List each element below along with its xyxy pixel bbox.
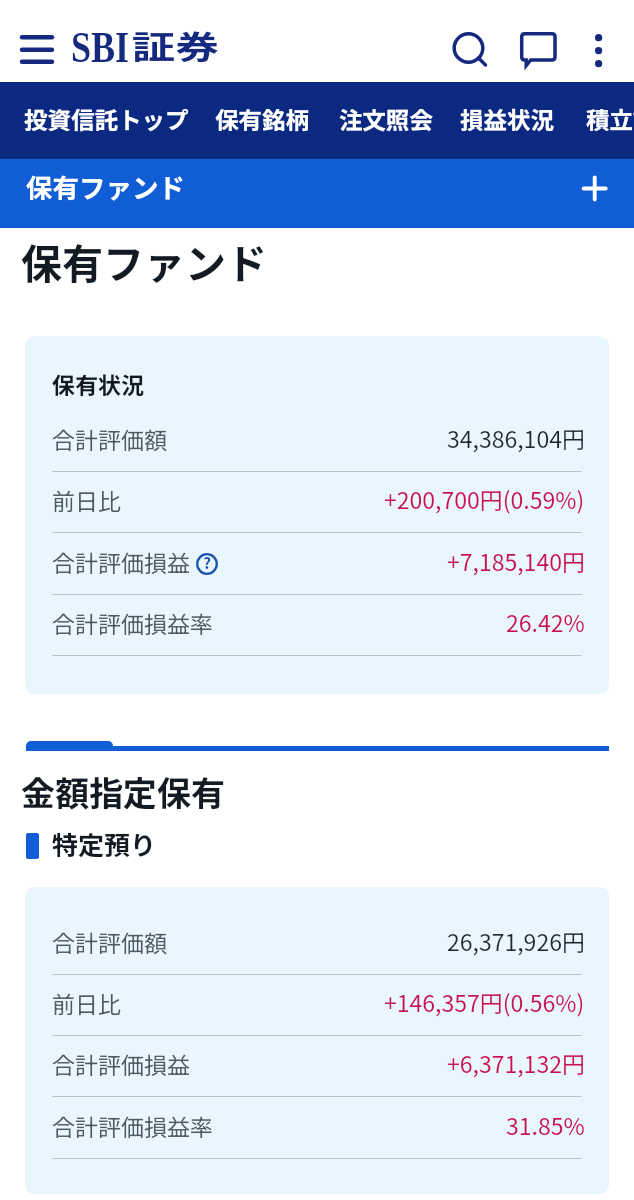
button[interactable]: 合計評価額 (52, 411, 582, 472)
staticText: +6,371,132円 (447, 1046, 585, 1079)
staticText: 34,386,104円 (447, 421, 585, 454)
button[interactable]: More options (579, 22, 619, 62)
button[interactable]: 合計評価損益 (52, 1036, 582, 1097)
button[interactable]: 特定預り (26, 825, 157, 863)
staticText: +200,700円(0.59%) (384, 482, 585, 515)
staticText: 前日比 (52, 483, 121, 516)
staticText: 証券 (132, 21, 220, 68)
button[interactable]: 合計評価額 (52, 914, 582, 975)
button[interactable]: 保有銘柄 (215, 102, 309, 136)
staticText: 26,371,926円 (447, 924, 585, 957)
staticText: 保有状況 (52, 367, 144, 400)
staticText: +7,185,140円 (447, 544, 585, 577)
staticText: 特定預り (52, 825, 157, 863)
button[interactable]: 合計評価損益率 (52, 1097, 582, 1159)
button[interactable]: 前日比 (52, 472, 582, 533)
button[interactable]: SBI (71, 16, 210, 66)
staticText: 保有銘柄 (215, 102, 309, 136)
staticText: 投資信託トップ (24, 102, 189, 136)
staticText: 合計評価損益 (52, 1047, 190, 1080)
staticText: 合計評価損益 (52, 545, 190, 578)
staticText: 注文照会 (339, 102, 433, 136)
staticText: SBI (71, 22, 129, 72)
staticText: 前日比 (52, 986, 121, 1019)
staticText: 保有ファンド (21, 231, 267, 290)
button[interactable]: Help (196, 553, 218, 575)
button[interactable]: 損益状況 (460, 102, 554, 136)
staticText: 金額指定保有 (21, 767, 225, 816)
button[interactable]: 前日比 (52, 975, 582, 1036)
staticText: 積立設定 (586, 102, 634, 136)
staticText: 保有ファンド (26, 167, 185, 205)
button[interactable]: 積立設定 (586, 102, 634, 136)
button[interactable]: 合計評価損益 (52, 533, 582, 595)
button[interactable]: Search (443, 22, 493, 72)
button[interactable]: 合計評価損益率 (52, 595, 582, 656)
staticText: 合計評価額 (52, 422, 167, 455)
button[interactable]: Messages (512, 24, 562, 74)
button[interactable]: Add fund (572, 166, 618, 212)
staticText: 31.85% (506, 1108, 585, 1141)
button[interactable]: Open navigation menu (22, 35, 52, 64)
button[interactable]: 注文照会 (339, 102, 433, 136)
staticText: 損益状況 (460, 102, 554, 136)
staticText: 合計評価損益率 (52, 606, 213, 639)
staticText: 合計評価損益率 (52, 1109, 213, 1142)
button[interactable]: 投資信託トップ (24, 102, 189, 136)
staticText: 合計評価額 (52, 925, 167, 958)
staticText: +146,357円(0.56%) (384, 985, 585, 1018)
staticText: 26.42% (506, 605, 585, 638)
button[interactable] (26, 741, 113, 751)
staticText: ? (203, 552, 211, 574)
